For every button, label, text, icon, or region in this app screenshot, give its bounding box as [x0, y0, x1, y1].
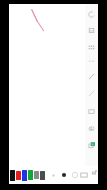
button[interactable]: Green colour: [28, 170, 33, 180]
button[interactable]: Dark grey colour: [40, 171, 45, 180]
button[interactable]: Line: [86, 88, 97, 99]
button[interactable]: Pen: [86, 71, 97, 82]
button[interactable]: Eraser: [86, 25, 97, 36]
button[interactable]: Red colour: [16, 171, 21, 180]
button[interactable]: Thin brush: [50, 172, 57, 179]
button[interactable]: Rectangle: [86, 106, 97, 117]
button[interactable]: Layers: [86, 139, 97, 150]
button[interactable]: Medium brush: [60, 171, 68, 179]
button[interactable]: Grey colour: [34, 171, 39, 179]
button[interactable]: Undo: [86, 9, 97, 20]
button[interactable]: Canvas size: [79, 170, 89, 180]
button[interactable]: Thick brush: [71, 171, 79, 179]
button[interactable]: Insert image: [92, 170, 96, 180]
button[interactable]: Blue colour: [22, 170, 27, 181]
button[interactable]: Dashes: [86, 56, 97, 67]
button[interactable]: Shape: [86, 123, 97, 134]
button[interactable]: [9, 4, 85, 166]
button[interactable]: Black colour: [10, 170, 15, 181]
button[interactable]: Grid: [86, 42, 97, 53]
